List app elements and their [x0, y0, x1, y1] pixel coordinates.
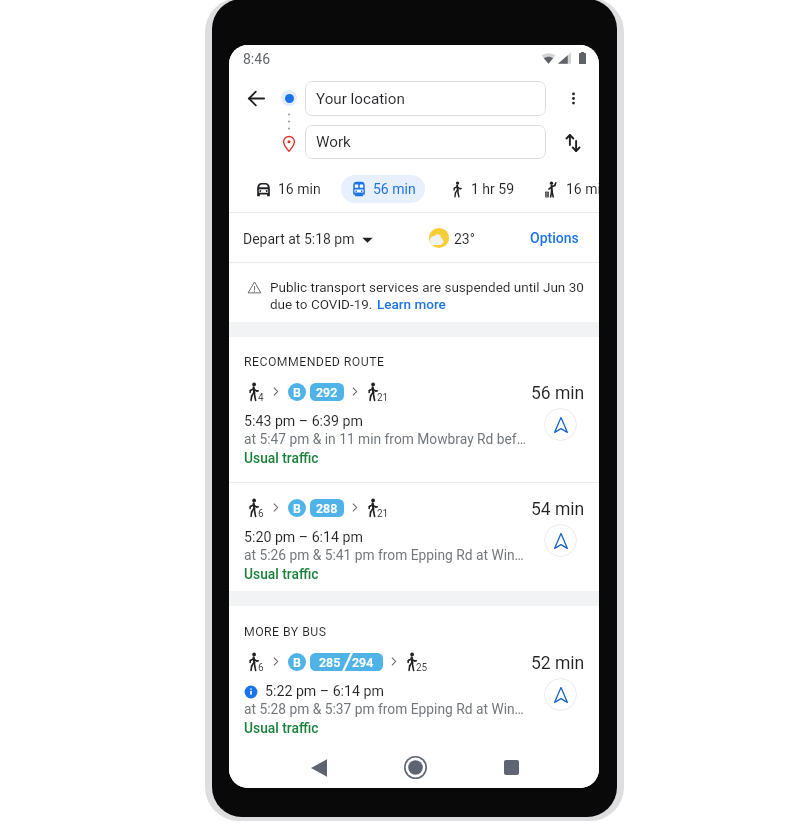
- button[interactable]: 6: [229, 482, 599, 593]
- staticText: 52 min: [531, 653, 585, 674]
- staticText: 25: [416, 662, 428, 674]
- button[interactable]: 1 hr 59: [448, 177, 515, 201]
- button[interactable]: Options: [530, 230, 579, 246]
- staticText: Depart at 5:18 pm: [243, 231, 355, 247]
- button[interactable]: Start navigation: [544, 678, 577, 711]
- staticText: 5:20 pm – 6:14 pm: [244, 529, 363, 546]
- button[interactable]: Swap origin and destination: [558, 128, 588, 158]
- staticText: 54 min: [531, 499, 585, 520]
- button[interactable]: Home: [397, 749, 434, 786]
- button[interactable]: Your location: [305, 81, 546, 116]
- button[interactable]: Back: [300, 749, 337, 786]
- staticText: 16 min: [278, 181, 321, 197]
- button[interactable]: Start navigation: [544, 408, 577, 441]
- button[interactable]: 56 min: [341, 175, 425, 203]
- button[interactable]: Recent apps: [493, 749, 530, 786]
- staticText: at 5:28 pm & 5:37 pm from Epping Rd at W…: [244, 701, 524, 717]
- staticText: 5:22 pm – 6:14 pm: [265, 683, 384, 700]
- staticText: 6: [258, 662, 264, 674]
- staticText: 56 min: [531, 383, 585, 404]
- button[interactable]: Work: [305, 125, 546, 159]
- staticText: 8:46: [243, 51, 270, 67]
- staticText: Your location: [316, 90, 405, 108]
- staticText: 292: [316, 385, 338, 400]
- button[interactable]: 16 min: [542, 177, 599, 201]
- staticText: Usual traffic: [244, 720, 319, 736]
- staticText: 23°: [454, 231, 475, 247]
- button[interactable]: Back: [241, 83, 271, 113]
- staticText: 4: [258, 392, 264, 404]
- staticText: Learn more: [377, 296, 446, 312]
- button[interactable]: Depart at 5:18 pm: [243, 229, 373, 249]
- staticText: 288: [316, 501, 338, 516]
- button[interactable]: Start navigation: [544, 524, 577, 557]
- staticText: RECOMMENDED ROUTE: [244, 355, 385, 369]
- staticText: 21: [377, 508, 389, 520]
- staticText: 1 hr 59: [471, 181, 515, 197]
- staticText: 21: [377, 392, 389, 404]
- staticText: at 5:26 pm & 5:41 pm from Epping Rd at W…: [244, 547, 524, 563]
- button[interactable]: More options: [558, 83, 588, 113]
- staticText: 56 min: [373, 181, 416, 197]
- staticText: 294: [352, 655, 374, 670]
- staticText: 16 min: [566, 181, 599, 197]
- staticText: B: [293, 501, 301, 516]
- staticText: 6: [258, 508, 264, 520]
- button[interactable]: 4: [229, 366, 599, 477]
- staticText: B: [293, 385, 301, 400]
- button[interactable]: Learn more: [377, 296, 446, 312]
- button[interactable]: 6: [229, 636, 599, 747]
- staticText: Work: [316, 133, 351, 151]
- staticText: at 5:47 pm & in 11 min from Mowbray Rd b…: [244, 431, 526, 447]
- staticText: Usual traffic: [244, 566, 319, 582]
- button[interactable]: 16 min: [254, 177, 321, 201]
- staticText: Options: [530, 230, 579, 246]
- staticText: MORE BY BUS: [244, 625, 327, 639]
- staticText: B: [293, 655, 301, 670]
- staticText: Usual traffic: [244, 450, 319, 466]
- staticText: 285: [319, 655, 341, 670]
- staticText: due to COVID-19.: [270, 296, 373, 312]
- staticText: Public transport services are suspended …: [270, 279, 584, 295]
- staticText: 5:43 pm – 6:39 pm: [244, 413, 363, 430]
